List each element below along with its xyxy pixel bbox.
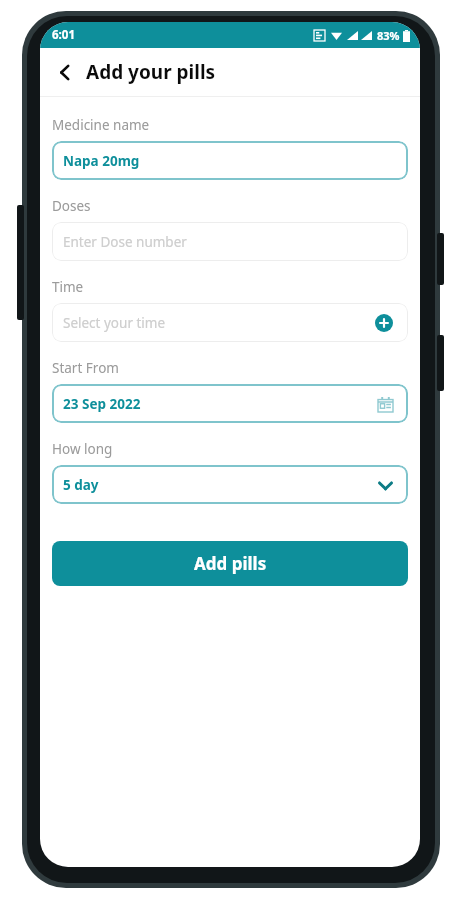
button[interactable]: Back [48, 55, 82, 89]
staticText: Doses [52, 197, 91, 215]
staticText: Add your pills [86, 59, 216, 85]
button[interactable]: Enter Dose number [52, 222, 408, 261]
staticText: Time [52, 278, 84, 296]
staticText: How long [52, 440, 113, 458]
staticText: Add pills [194, 552, 267, 575]
button[interactable]: Add pills [52, 541, 408, 586]
button[interactable]: Napa 20mg [52, 141, 408, 180]
staticText: Start From [52, 359, 119, 377]
button[interactable]: 5 day [52, 465, 408, 504]
staticText: 83% [377, 28, 400, 43]
staticText: Enter Dose number [63, 233, 187, 251]
staticText: 6:01 [52, 27, 75, 43]
staticText: Select your time [63, 314, 166, 332]
staticText: 23 Sep 2022 [63, 395, 141, 413]
staticText: 5 day [63, 476, 99, 494]
button[interactable]: Add time [371, 310, 397, 336]
button[interactable]: 23 Sep 2022 [52, 384, 408, 423]
button[interactable]: Select your time [52, 303, 408, 342]
staticText: Napa 20mg [63, 152, 140, 170]
staticText: Medicine name [52, 116, 150, 134]
button[interactable]: Pick date [373, 392, 397, 416]
button[interactable]: Expand duration [373, 473, 397, 497]
